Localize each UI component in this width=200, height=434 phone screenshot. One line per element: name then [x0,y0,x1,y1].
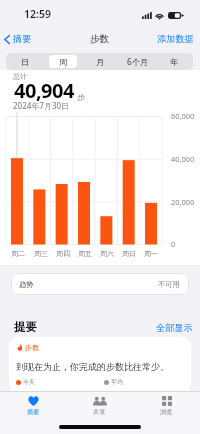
staticText: 周二 [11,249,25,258]
staticText: 60,000 [171,111,195,121]
staticText: 步数 [90,33,110,45]
button[interactable]: 趋势 [11,273,189,295]
staticText: 全部显示 [156,322,193,332]
staticText: 平均 [111,378,123,386]
staticText: 到现在为止，你完成的步数比往常少。 [16,361,169,372]
staticText: 6个月 [127,56,149,67]
staticText: 提要 [14,320,37,334]
staticText: 摘要 [13,33,32,45]
staticText: 2024年7月30日 [13,100,70,111]
button[interactable]: 摘要 [0,30,38,48]
button[interactable]: 浏览 [133,392,200,416]
staticText: 0 [171,239,176,249]
button[interactable]: 日 [6,53,44,70]
staticText: 共享 [93,408,106,416]
staticText: 月 [96,57,105,67]
button[interactable]: 6个月 [119,53,156,70]
staticText: 20,000 [171,197,195,207]
staticText: 趋势 [19,280,34,289]
staticText: 日 [21,57,30,67]
staticText: 年 [170,57,179,67]
button[interactable]: 步数 [9,337,191,393]
staticText: 周一 [144,249,158,258]
staticText: 周三 [34,249,48,258]
button[interactable]: 全部显示 [150,319,200,335]
staticText: 摘要 [27,408,40,416]
staticText: 周日 [122,249,136,258]
button[interactable]: 共享 [66,392,133,416]
staticText: 周 [59,57,68,67]
staticText: 步数 [25,343,39,352]
staticText: 40,904 [14,77,74,104]
staticText: 周四 [56,249,70,258]
staticText: 不可用 [158,280,180,289]
staticText: 40,000 [171,154,195,164]
button[interactable]: 月 [82,53,119,70]
staticText: 周六 [100,249,114,258]
staticText: 今天 [23,378,35,386]
button[interactable]: 年 [156,53,193,70]
staticText: 12:59 [24,7,51,21]
button[interactable]: 周 [44,53,82,70]
button[interactable]: 摘要 [0,392,66,416]
staticText: 总计 [13,72,27,81]
button[interactable]: 添加数据 [150,30,200,48]
staticText: 步 [77,92,85,102]
staticText: 添加数据 [157,33,194,45]
staticText: 周五 [78,249,92,258]
staticText: 浏览 [160,408,173,416]
